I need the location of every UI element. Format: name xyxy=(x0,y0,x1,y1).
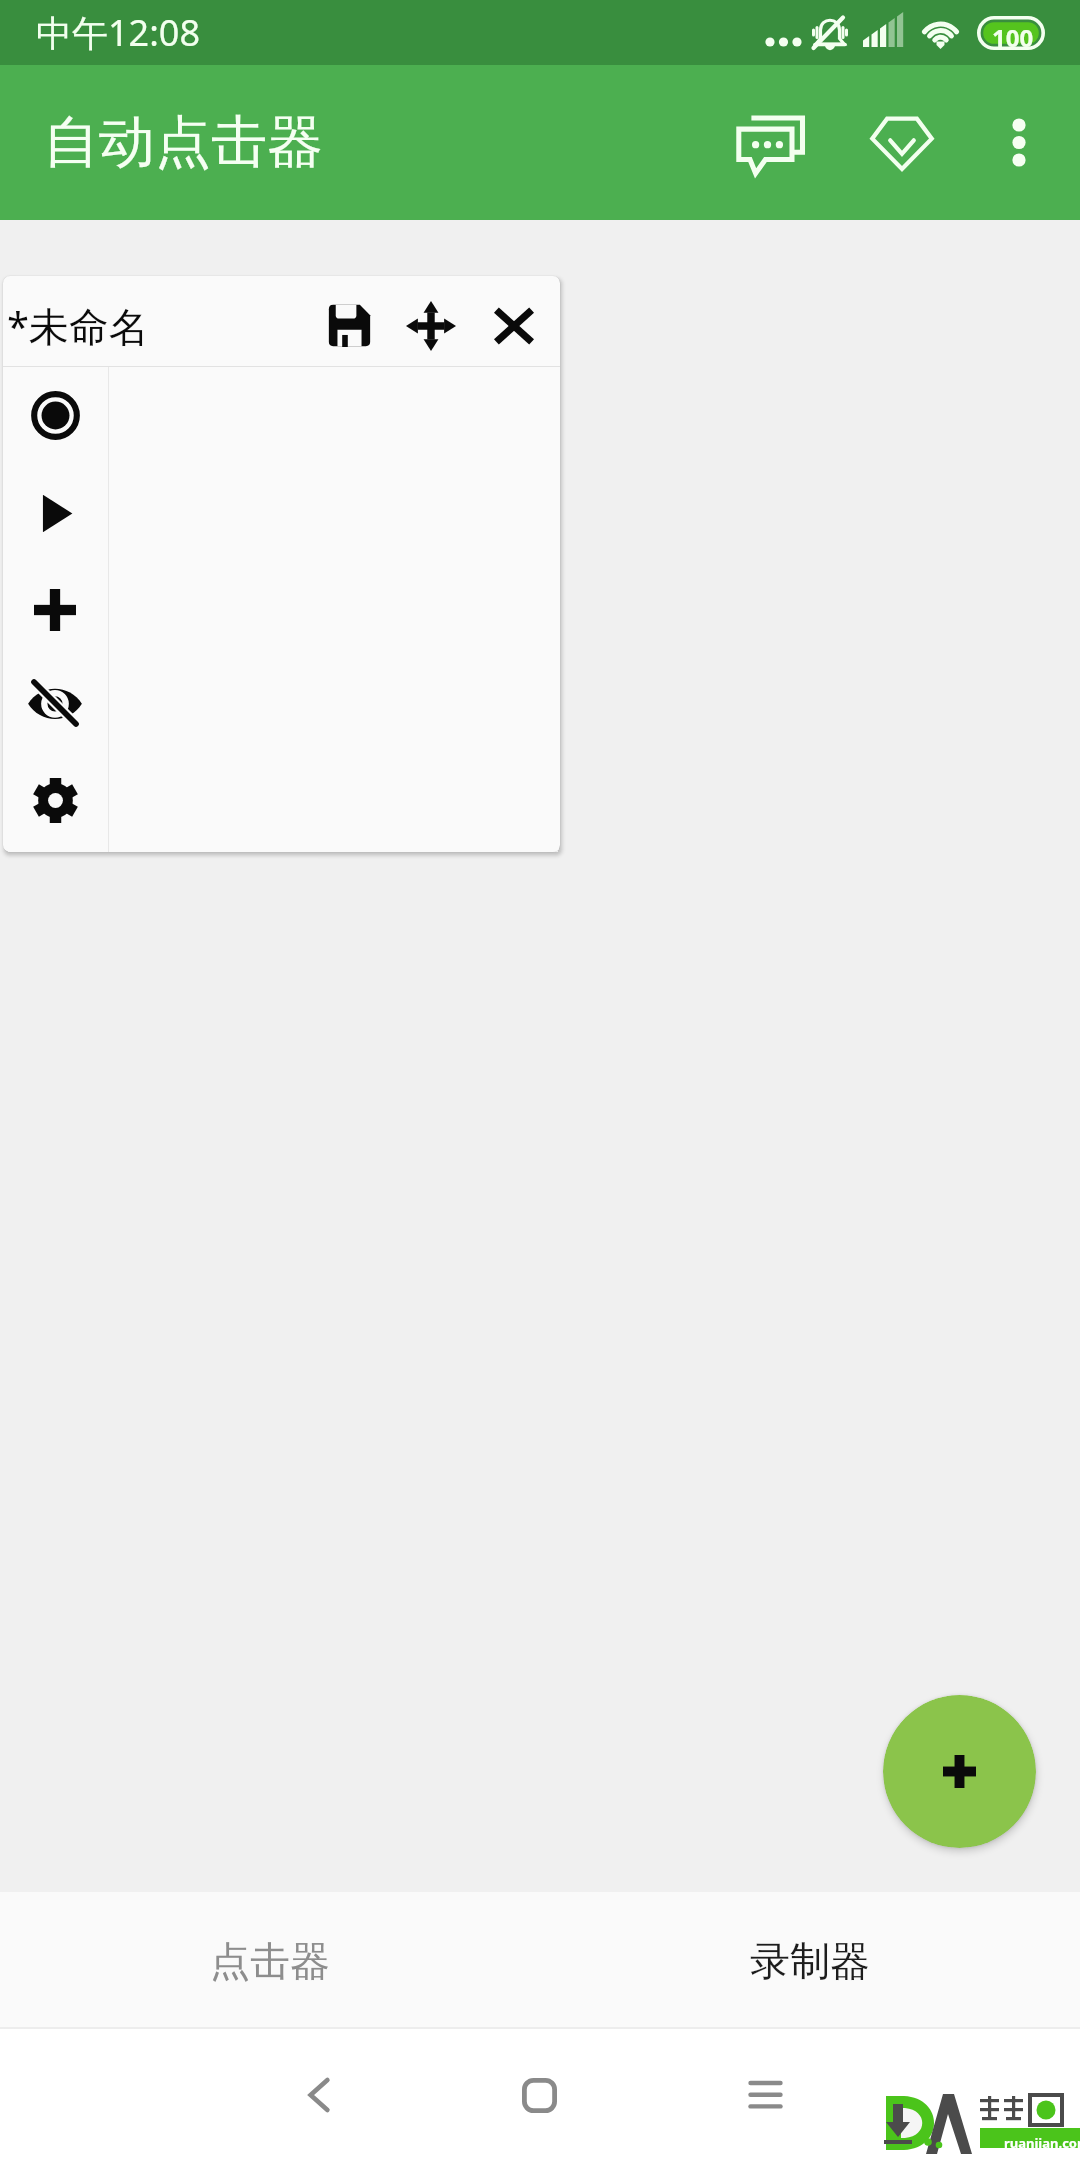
button[interactable]: Recents xyxy=(705,2035,825,2155)
staticText: 录制器 xyxy=(750,1936,870,1986)
button[interactable]: Add xyxy=(883,1695,1036,1848)
staticText: *未命名 xyxy=(7,298,150,353)
button[interactable]: Back xyxy=(259,2035,379,2155)
button[interactable]: Settings xyxy=(3,752,108,848)
button[interactable]: Home xyxy=(479,2035,599,2155)
staticText: 100 xyxy=(992,21,1034,54)
button[interactable]: Add xyxy=(3,561,108,657)
button[interactable]: Close xyxy=(473,285,555,367)
staticText: 中午12:08 xyxy=(36,8,201,57)
button[interactable]: Hide xyxy=(3,655,108,751)
staticText: ruanjian.com xyxy=(1004,2134,1080,2152)
button[interactable]: More options xyxy=(949,73,1080,213)
button[interactable]: 点击器 xyxy=(0,1892,540,2027)
staticText: 点击器 xyxy=(210,1936,330,1986)
button[interactable]: Premium xyxy=(832,73,972,213)
button[interactable]: Save xyxy=(308,284,390,366)
button[interactable]: Play xyxy=(3,465,108,561)
button[interactable]: Record xyxy=(3,367,108,463)
button[interactable]: Feedback xyxy=(701,73,841,213)
button[interactable]: Move xyxy=(390,285,472,367)
button[interactable]: 录制器 xyxy=(540,1892,1080,2027)
staticText: 自动点击器 xyxy=(43,107,323,178)
